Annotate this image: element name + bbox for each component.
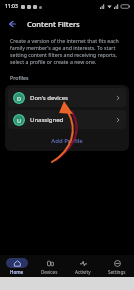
staticText: Unassigned (30, 116, 64, 124)
staticText: Don's devices (30, 94, 68, 102)
staticText: Create a version of the internet that fi… (10, 37, 124, 65)
staticText: Profiles (10, 74, 29, 81)
button[interactable]: D (8, 88, 126, 107)
button[interactable]: Settings (100, 257, 134, 276)
staticText: 11:03 (5, 3, 18, 10)
staticText: Add Profile (51, 137, 83, 145)
staticText: U (17, 117, 22, 124)
staticText: Activity (75, 269, 91, 275)
staticText: Devices (41, 269, 58, 275)
staticText: Settings (108, 269, 126, 275)
staticText: D (17, 95, 22, 102)
staticText: Content Filters (27, 19, 80, 29)
button[interactable]: Add Profile (5, 133, 129, 148)
button[interactable]: Home (0, 257, 33, 276)
button[interactable]: Activity (66, 257, 100, 276)
staticText: Home (10, 269, 24, 275)
button[interactable]: Devices (33, 257, 66, 276)
button[interactable]: U (8, 110, 126, 129)
button[interactable]: Back (4, 16, 20, 32)
